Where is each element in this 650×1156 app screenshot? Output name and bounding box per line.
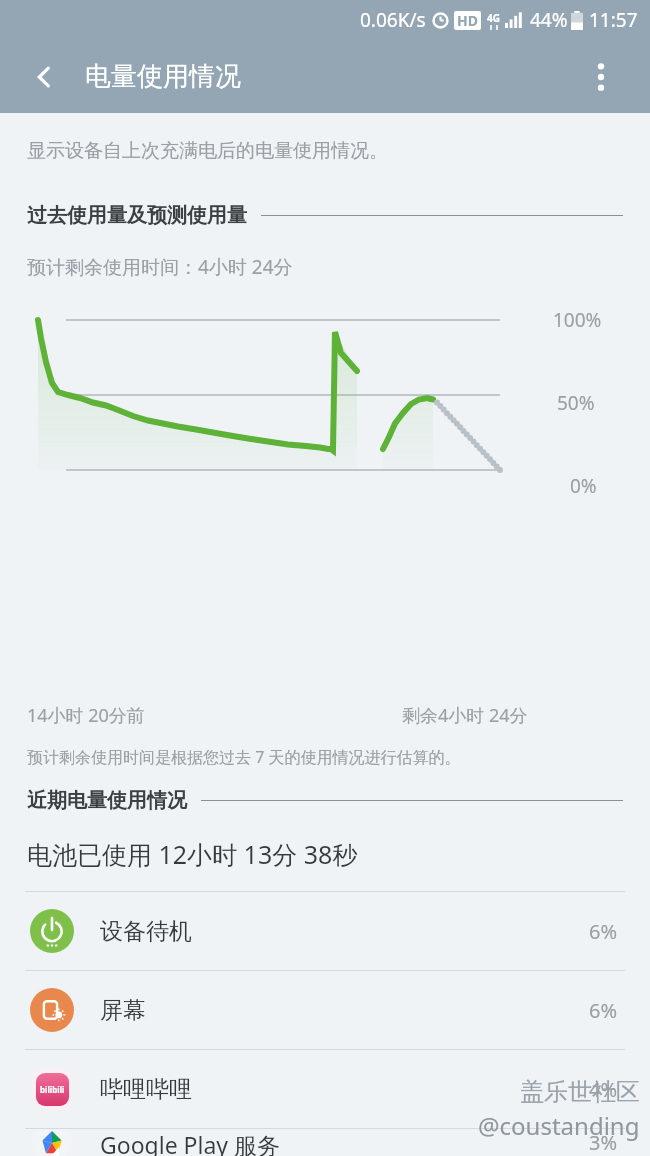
button[interactable]: bilibili bbox=[0, 1050, 650, 1128]
staticText: 电量使用情况 bbox=[85, 60, 241, 93]
staticText: 哔哩哔哩 bbox=[100, 1075, 192, 1104]
staticText: 屏幕 bbox=[100, 996, 146, 1025]
button[interactable]: Back bbox=[20, 53, 68, 101]
staticText: 0.06K/s bbox=[360, 7, 426, 33]
button[interactable]: 设备待机 bbox=[0, 892, 650, 970]
staticText: 6% bbox=[589, 997, 618, 1024]
staticText: 50% bbox=[557, 390, 595, 416]
staticText: 设备待机 bbox=[100, 917, 192, 946]
button[interactable]: Google Play 服务 bbox=[0, 1129, 650, 1156]
button[interactable]: 屏幕 bbox=[0, 971, 650, 1049]
staticText: 14小时 20分前 bbox=[27, 703, 145, 728]
staticText: 0% bbox=[570, 473, 597, 499]
staticText: 100% bbox=[553, 307, 602, 333]
staticText: 剩余4小时 24分 bbox=[402, 703, 528, 728]
staticText: 预计剩余使用时间：4小时 24分 bbox=[27, 254, 293, 280]
staticText: 盖乐世社区 bbox=[520, 1077, 640, 1107]
staticText: @coustanding bbox=[478, 1109, 640, 1142]
staticText: 6% bbox=[589, 918, 618, 945]
staticText: 3% bbox=[589, 1129, 618, 1156]
staticText: 显示设备自上次充满电后的电量使用情况。 bbox=[27, 139, 388, 163]
staticText: 11:57 bbox=[589, 7, 638, 33]
staticText: 44% bbox=[530, 7, 568, 33]
staticText: 电池已使用 12小时 13分 38秒 bbox=[27, 837, 358, 871]
staticText: bilibili bbox=[40, 1084, 65, 1095]
staticText: Google Play 服务 bbox=[100, 1129, 281, 1156]
staticText: 4% bbox=[589, 1076, 618, 1103]
staticText: 4G bbox=[487, 11, 500, 25]
button[interactable]: More options bbox=[579, 55, 623, 99]
staticText: 近期电量使用情况 bbox=[27, 788, 187, 813]
staticText: 预计剩余使用时间是根据您过去 7 天的使用情况进行估算的。 bbox=[27, 746, 461, 768]
staticText: HD bbox=[457, 11, 478, 30]
staticText: 过去使用量及预测使用量 bbox=[27, 203, 247, 228]
